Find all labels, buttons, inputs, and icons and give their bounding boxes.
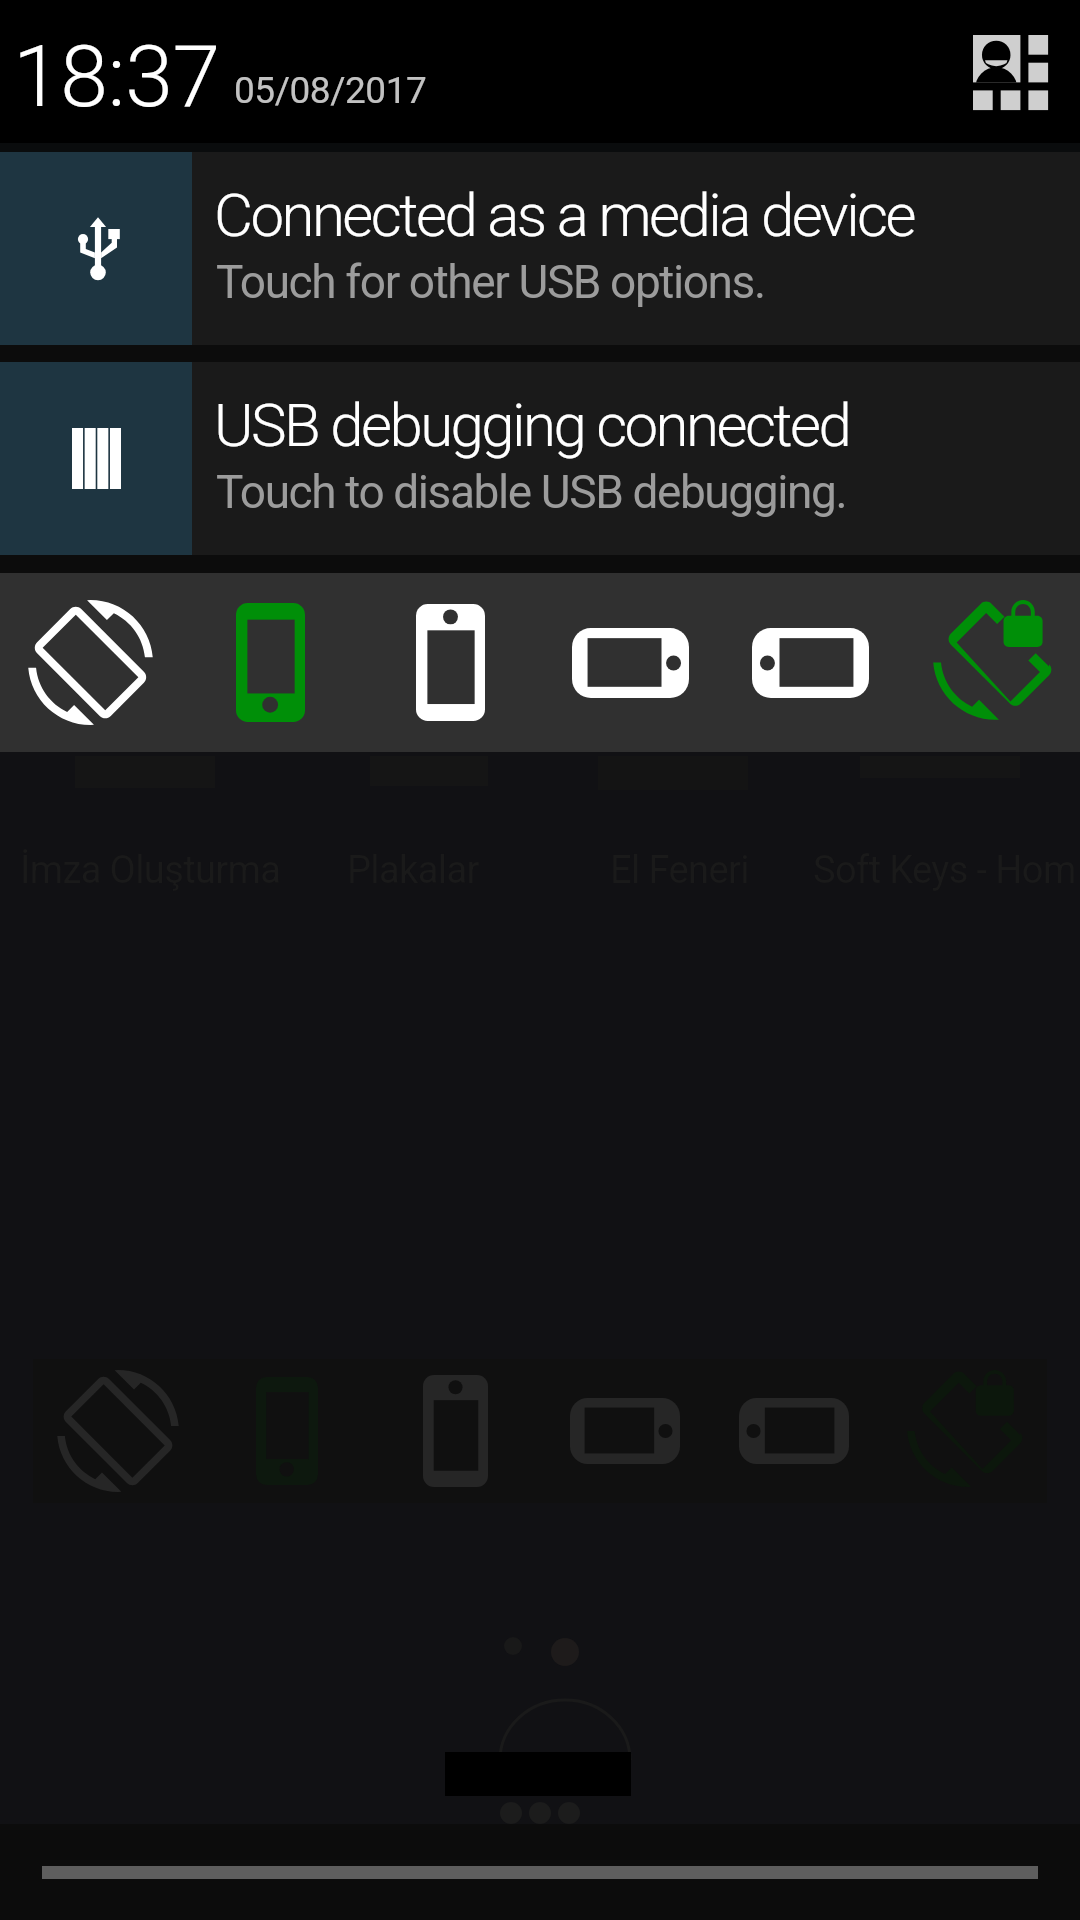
button[interactable]: Connected as a media device — [0, 152, 1080, 345]
button[interactable]: Auto rotate — [0, 573, 180, 752]
button[interactable]: USB debugging connected — [0, 362, 1080, 555]
staticText: El Feneri — [610, 848, 749, 893]
button[interactable]: Lock rotation — [900, 573, 1080, 752]
button[interactable]: Rotate portrait — [180, 573, 360, 752]
staticText: Touch for other USB options. — [216, 255, 765, 309]
button[interactable]: Gallery — [958, 20, 1062, 124]
staticText: Plakalar — [347, 848, 479, 893]
button[interactable]: Rotate landscape reverse — [720, 573, 900, 752]
staticText: Soft Keys - Hom — [813, 848, 1076, 893]
button[interactable]: Rotate portrait upside down — [360, 573, 540, 752]
staticText: Touch to disable USB debugging. — [216, 465, 847, 519]
staticText: USB debugging connected — [214, 390, 850, 460]
staticText: İmza Oluşturma — [20, 848, 281, 893]
button[interactable]: Rotate landscape — [540, 573, 720, 752]
staticText: 05/08/2017 — [234, 69, 427, 112]
staticText: 18:37 — [13, 26, 220, 127]
staticText: Connected as a media device — [214, 180, 914, 250]
